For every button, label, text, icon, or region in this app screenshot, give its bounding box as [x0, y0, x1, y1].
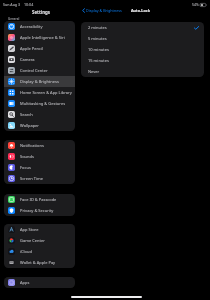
button[interactable]: 2 minutes [81, 22, 204, 33]
button[interactable]: Never [81, 66, 204, 77]
staticText: 10:04 [24, 2, 34, 7]
button[interactable]: Display & Brightness [82, 8, 123, 13]
staticText: 54% [192, 2, 199, 7]
staticText: General [8, 17, 20, 21]
button[interactable]: Apps [4, 277, 75, 288]
staticText: Control Center [20, 68, 48, 73]
staticText: 5 minutes [88, 36, 107, 41]
button[interactable]: Face ID & Passcode [4, 194, 75, 205]
button[interactable]: Apple Pencil [4, 43, 75, 54]
button[interactable]: Focus [4, 162, 75, 173]
staticText: 10 minutes [88, 47, 109, 52]
button[interactable]: Screen Time [4, 173, 75, 184]
button[interactable]: Camera [4, 54, 75, 65]
staticText: Apple Intelligence & Siri [20, 35, 65, 40]
staticText: Display & Brightness [20, 79, 59, 84]
button[interactable]: 5 minutes [81, 33, 204, 44]
button[interactable]: Apple Intelligence & Siri [4, 32, 75, 43]
staticText: Apps [20, 280, 30, 285]
staticText: Focus [20, 165, 31, 170]
button[interactable]: Home Screen & App Library [4, 87, 75, 98]
staticText: Multitasking & Gestures [20, 101, 66, 106]
button[interactable]: Privacy & Security [4, 205, 75, 216]
staticText: Apple Pencil [20, 46, 43, 51]
staticText: Settings [32, 9, 50, 15]
other: Selected [194, 26, 199, 30]
staticText: iCloud [20, 249, 32, 254]
staticText: Privacy & Security [20, 208, 54, 213]
button[interactable]: 10 minutes [81, 44, 204, 55]
staticText: Screen Time [20, 176, 43, 181]
staticText: Accessibility [20, 24, 43, 29]
button[interactable]: App Store [4, 224, 75, 235]
button[interactable]: 15 minutes [81, 55, 204, 66]
staticText: Face ID & Passcode [20, 197, 57, 202]
button[interactable]: Accessibility [4, 21, 75, 32]
button[interactable]: Control Center [4, 65, 75, 76]
staticText: Sounds [20, 154, 34, 159]
staticText: Display & Brightness [86, 8, 122, 13]
button[interactable]: Display & Brightness [4, 76, 75, 87]
staticText: Sun Aug 3 [3, 2, 21, 7]
staticText: Notifications [20, 143, 44, 148]
button[interactable]: Wallpaper [4, 120, 75, 131]
button[interactable]: Wallet & Apple Pay [4, 257, 75, 268]
button[interactable]: iCloud [4, 246, 75, 257]
staticText: 15 minutes [88, 58, 109, 63]
staticText: Game Center [20, 238, 45, 243]
button[interactable]: Notifications [4, 140, 75, 151]
button[interactable]: Sounds [4, 151, 75, 162]
staticText: Wallpaper [20, 123, 40, 128]
staticText: Auto-Lock [131, 8, 151, 13]
staticText: Home Screen & App Library [20, 90, 72, 95]
button[interactable]: Multitasking & Gestures [4, 98, 75, 109]
button[interactable]: Game Center [4, 235, 75, 246]
staticText: App Store [20, 227, 39, 232]
staticText: 2 minutes [88, 25, 107, 30]
staticText: Camera [20, 57, 35, 62]
staticText: Wallet & Apple Pay [20, 260, 56, 265]
button[interactable]: Search [4, 109, 75, 120]
staticText: Never [88, 69, 100, 74]
staticText: Search [20, 112, 33, 117]
